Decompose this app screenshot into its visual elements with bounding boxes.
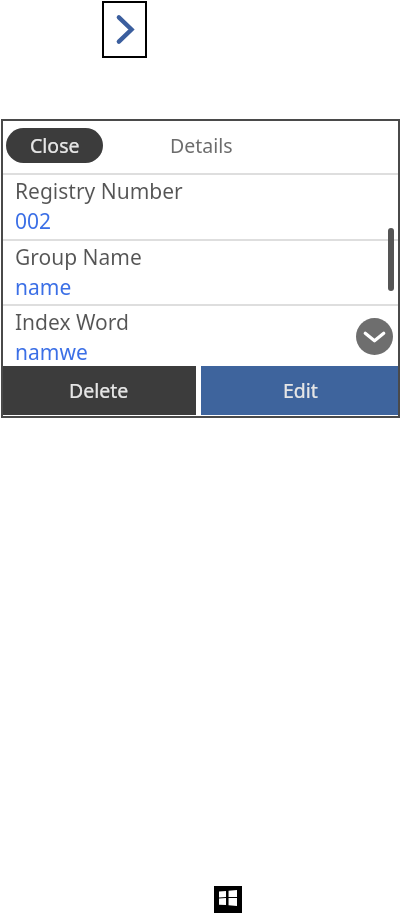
staticText: Index Word	[15, 308, 129, 337]
button[interactable]: Start	[214, 886, 242, 913]
staticText: Group Name	[15, 243, 142, 272]
button[interactable]: Edit	[201, 366, 400, 415]
button[interactable]: Close	[6, 128, 103, 163]
button[interactable]: Delete	[1, 366, 196, 415]
button[interactable]: Group Name	[1, 241, 400, 304]
button[interactable]: Index Word	[1, 306, 400, 366]
button[interactable]: Scroll down	[356, 318, 393, 355]
staticText: Details	[170, 132, 233, 159]
staticText: Close	[30, 132, 80, 159]
button[interactable]: Next	[102, 1, 147, 58]
staticText: Delete	[69, 377, 129, 404]
staticText: namwe	[15, 338, 88, 366]
button[interactable]: Registry Number	[1, 175, 400, 239]
staticText: Edit	[283, 377, 318, 404]
staticText: Registry Number	[15, 177, 183, 206]
staticText: 002	[15, 207, 52, 236]
staticText: name	[15, 273, 72, 302]
